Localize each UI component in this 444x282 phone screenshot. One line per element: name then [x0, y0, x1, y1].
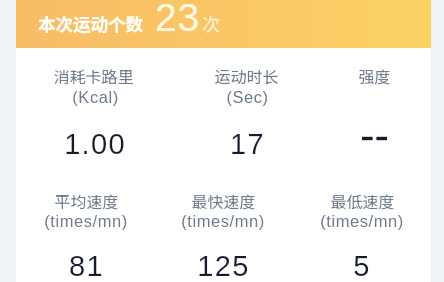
staticText: (Sec) — [226, 88, 269, 106]
staticText: 最低速度 — [330, 189, 395, 212]
staticText: (times/mn) — [320, 212, 404, 230]
staticText: 125 — [197, 250, 250, 282]
staticText: 消耗卡路里 — [53, 64, 134, 87]
staticText: 运动时长 — [214, 64, 279, 87]
staticText: 平均速度 — [54, 189, 119, 212]
staticText: 1.00 — [64, 128, 126, 160]
staticText: 17 — [230, 128, 265, 160]
staticText: 强度 — [358, 64, 391, 87]
staticText: 23 — [155, 0, 200, 40]
staticText: 81 — [69, 250, 104, 282]
staticText: 最快速度 — [191, 189, 256, 212]
staticText: (times/mn) — [181, 212, 265, 230]
staticText: (Kcal) — [72, 88, 119, 106]
button[interactable]: 本次运动个数 23 次 — [16, 0, 431, 48]
staticText: 本次运动个数 — [38, 11, 143, 36]
staticText: 5 — [353, 250, 371, 282]
staticText: (times/mn) — [44, 212, 128, 230]
staticText: 次 — [202, 10, 220, 36]
